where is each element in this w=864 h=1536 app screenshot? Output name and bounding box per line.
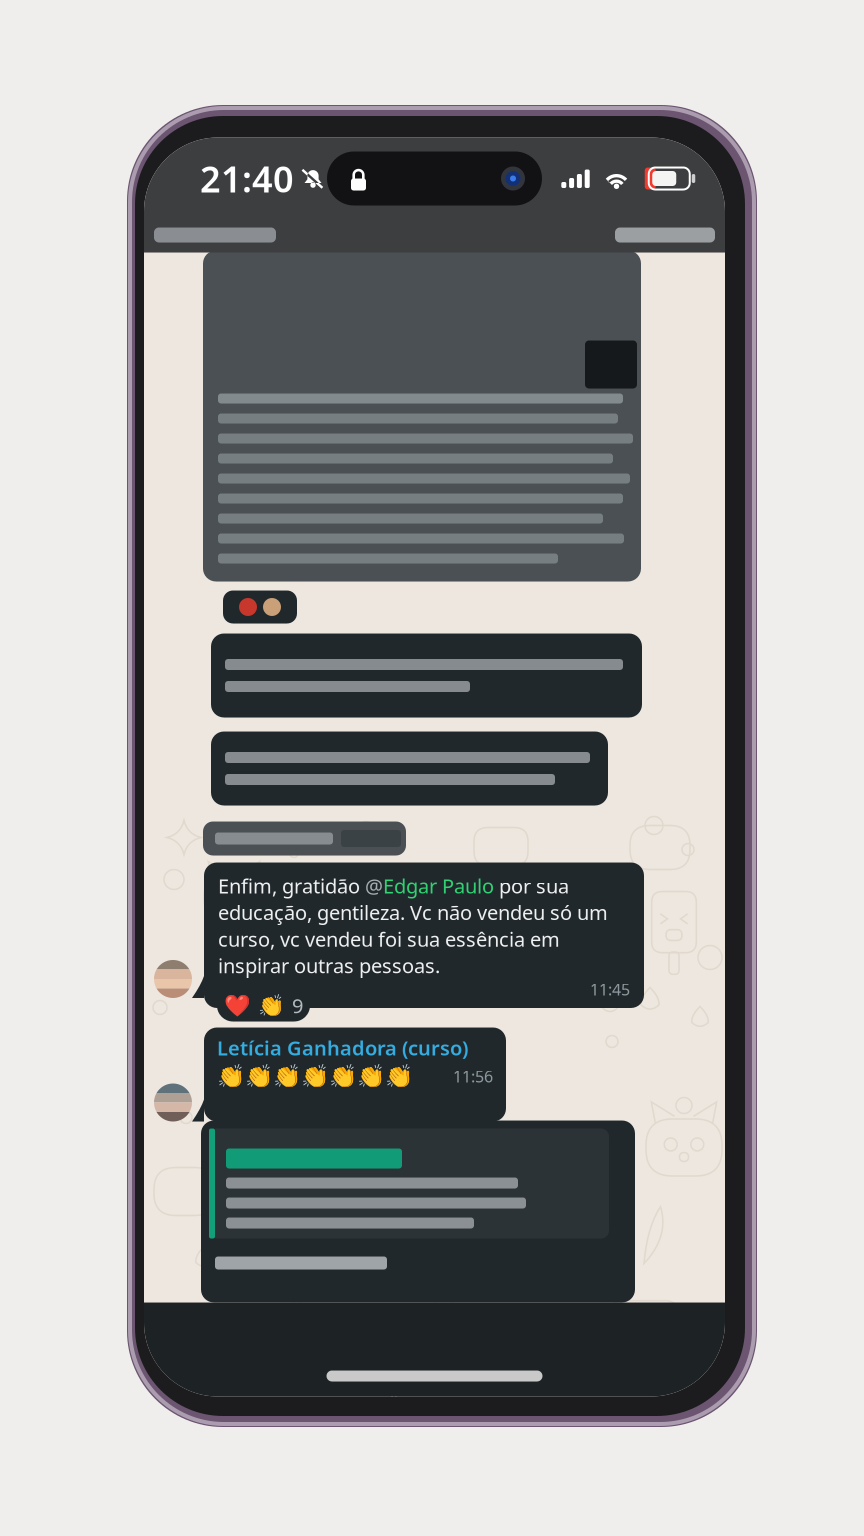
staticText: ❤️ [224,993,251,1018]
staticText: Enfim, gratidão @Edgar Paulo por sua edu… [218,872,608,979]
staticText: 21:40 [200,155,294,202]
staticText: 11:56 [453,1066,493,1087]
staticText: 9 [292,992,303,1019]
staticText: 👏 [258,993,285,1018]
staticText: 11:45 [590,979,630,1000]
staticText: 👏👏👏👏👏👏👏 [217,1063,413,1089]
staticText: Letícia Ganhadora (curso) [217,1034,468,1061]
